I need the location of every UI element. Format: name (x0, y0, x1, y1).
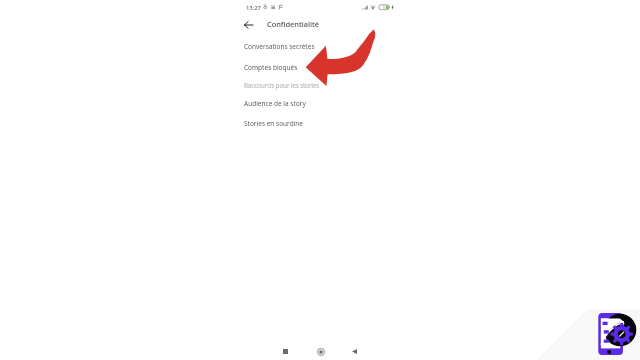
button[interactable]: Comptes bloqués (240, 58, 398, 76)
staticText: Confidentialité (267, 19, 320, 29)
button[interactable]: Stories en sourdine (240, 114, 398, 132)
button[interactable]: Raccourcis pour les stories (240, 76, 398, 94)
staticText: Raccourcis pour les stories (244, 81, 320, 90)
button[interactable]: Home (313, 344, 328, 359)
button[interactable]: Conversations secrètes (240, 37, 398, 55)
staticText: Conversations secrètes (244, 42, 315, 51)
button[interactable]: Audience de la story (240, 94, 398, 112)
staticText: Stories en sourdine (244, 119, 304, 128)
button[interactable]: Recent apps (278, 344, 293, 359)
staticText: 13:27 (246, 4, 261, 12)
staticText: Comptes bloqués (244, 63, 298, 72)
button[interactable]: Back (347, 344, 362, 359)
button[interactable]: Back (241, 17, 256, 32)
staticText: Audience de la story (244, 99, 306, 108)
